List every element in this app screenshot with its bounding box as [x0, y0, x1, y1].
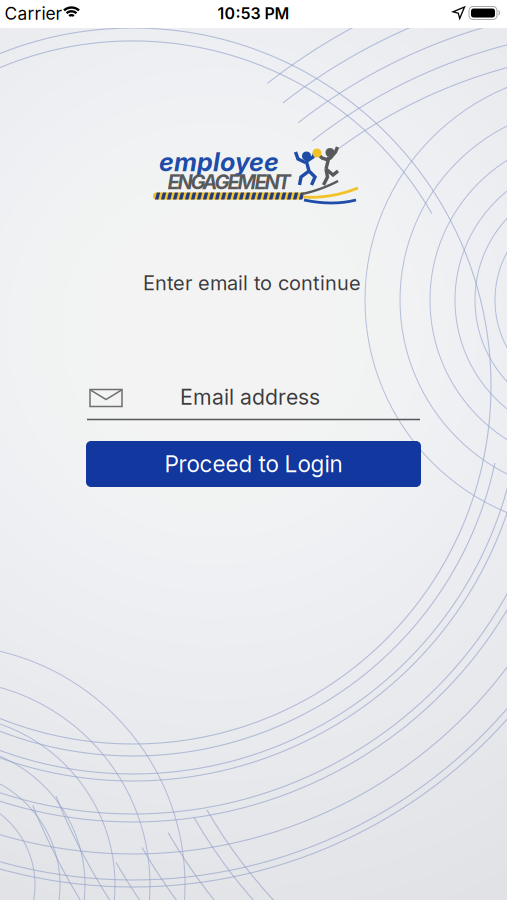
staticText: ENGAGEMENT — [167, 170, 290, 194]
staticText: Carrier — [4, 3, 62, 24]
staticText: Proceed to Login — [164, 450, 342, 478]
button[interactable]: Proceed to Login — [86, 441, 421, 487]
staticText: Enter email to continue — [143, 271, 361, 295]
staticText: 10:53 PM — [217, 4, 289, 23]
staticText: employee — [159, 147, 279, 177]
staticText: Email address — [180, 384, 320, 410]
button[interactable]: Email address — [86, 380, 421, 424]
